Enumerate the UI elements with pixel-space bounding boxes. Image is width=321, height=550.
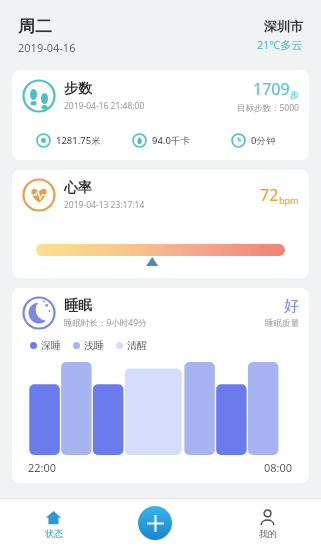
button[interactable]: 94.0千卡 xyxy=(115,133,207,148)
staticText: 睡眠 xyxy=(64,297,92,315)
staticText: 1281.75米 xyxy=(56,134,101,147)
staticText: 清醒 xyxy=(127,339,147,352)
staticText: 08:00 xyxy=(264,460,293,475)
staticText: 22:00 xyxy=(28,460,57,475)
button[interactable]: 心率 xyxy=(12,170,309,278)
button[interactable]: 清醒 xyxy=(116,339,147,352)
staticText: 步 xyxy=(290,89,299,100)
staticText: 2019-04-13 23:17:14 xyxy=(64,199,145,211)
staticText: 0分钟 xyxy=(251,134,276,147)
staticText: 21℃多云 xyxy=(257,37,303,52)
staticText: 睡眠时长：9小时49分 xyxy=(64,317,147,329)
staticText: 睡眠质量 xyxy=(265,318,299,329)
button[interactable]: 我的 xyxy=(214,498,321,550)
staticText: 好 xyxy=(284,297,299,316)
staticText: 72 xyxy=(260,184,279,206)
staticText: bpm xyxy=(279,194,299,206)
staticText: 1709 xyxy=(253,78,290,100)
staticText: 2019-04-16 21:48:00 xyxy=(64,100,145,112)
staticText: 心率 xyxy=(64,179,92,197)
staticText: 浅睡 xyxy=(84,339,104,352)
staticText: 2019-04-16 xyxy=(18,40,76,55)
staticText: 步数 xyxy=(64,80,92,98)
button[interactable]: Add xyxy=(138,506,172,540)
staticText: 94.0千卡 xyxy=(152,134,190,147)
staticText: 我的 xyxy=(259,528,277,539)
staticText: 周二 xyxy=(18,16,52,37)
button[interactable]: 深睡 xyxy=(30,339,61,352)
button[interactable]: 1281.75米 xyxy=(22,133,115,148)
staticText: 深睡 xyxy=(41,339,61,352)
button[interactable]: 0分钟 xyxy=(207,133,299,148)
button[interactable]: 睡眠 xyxy=(12,288,309,483)
button[interactable]: 步数 xyxy=(12,70,309,160)
button[interactable]: 状态 xyxy=(0,498,107,550)
staticText: 状态 xyxy=(45,528,63,539)
staticText: 目标步数：5000 xyxy=(237,102,299,114)
staticText: 深圳市 xyxy=(264,18,303,34)
button[interactable]: 浅睡 xyxy=(73,339,104,352)
